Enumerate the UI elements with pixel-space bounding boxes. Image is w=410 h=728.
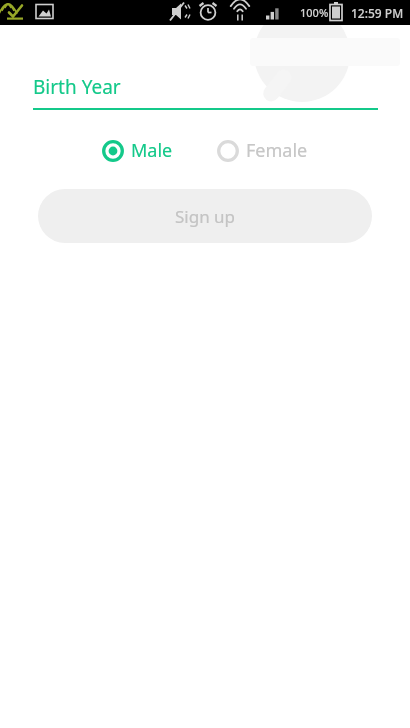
staticText: Birth Year [33, 74, 121, 100]
staticText: 12:59 PM [351, 5, 404, 21]
button[interactable]: Sign up [38, 189, 372, 243]
button[interactable]: Male [102, 134, 173, 167]
button[interactable]: Female [217, 134, 308, 167]
staticText: Female [246, 138, 308, 163]
staticText: 100% [300, 5, 329, 20]
staticText: Male [131, 138, 173, 163]
button[interactable]: Birth Year [33, 74, 378, 110]
staticText: Sign up [175, 205, 236, 228]
